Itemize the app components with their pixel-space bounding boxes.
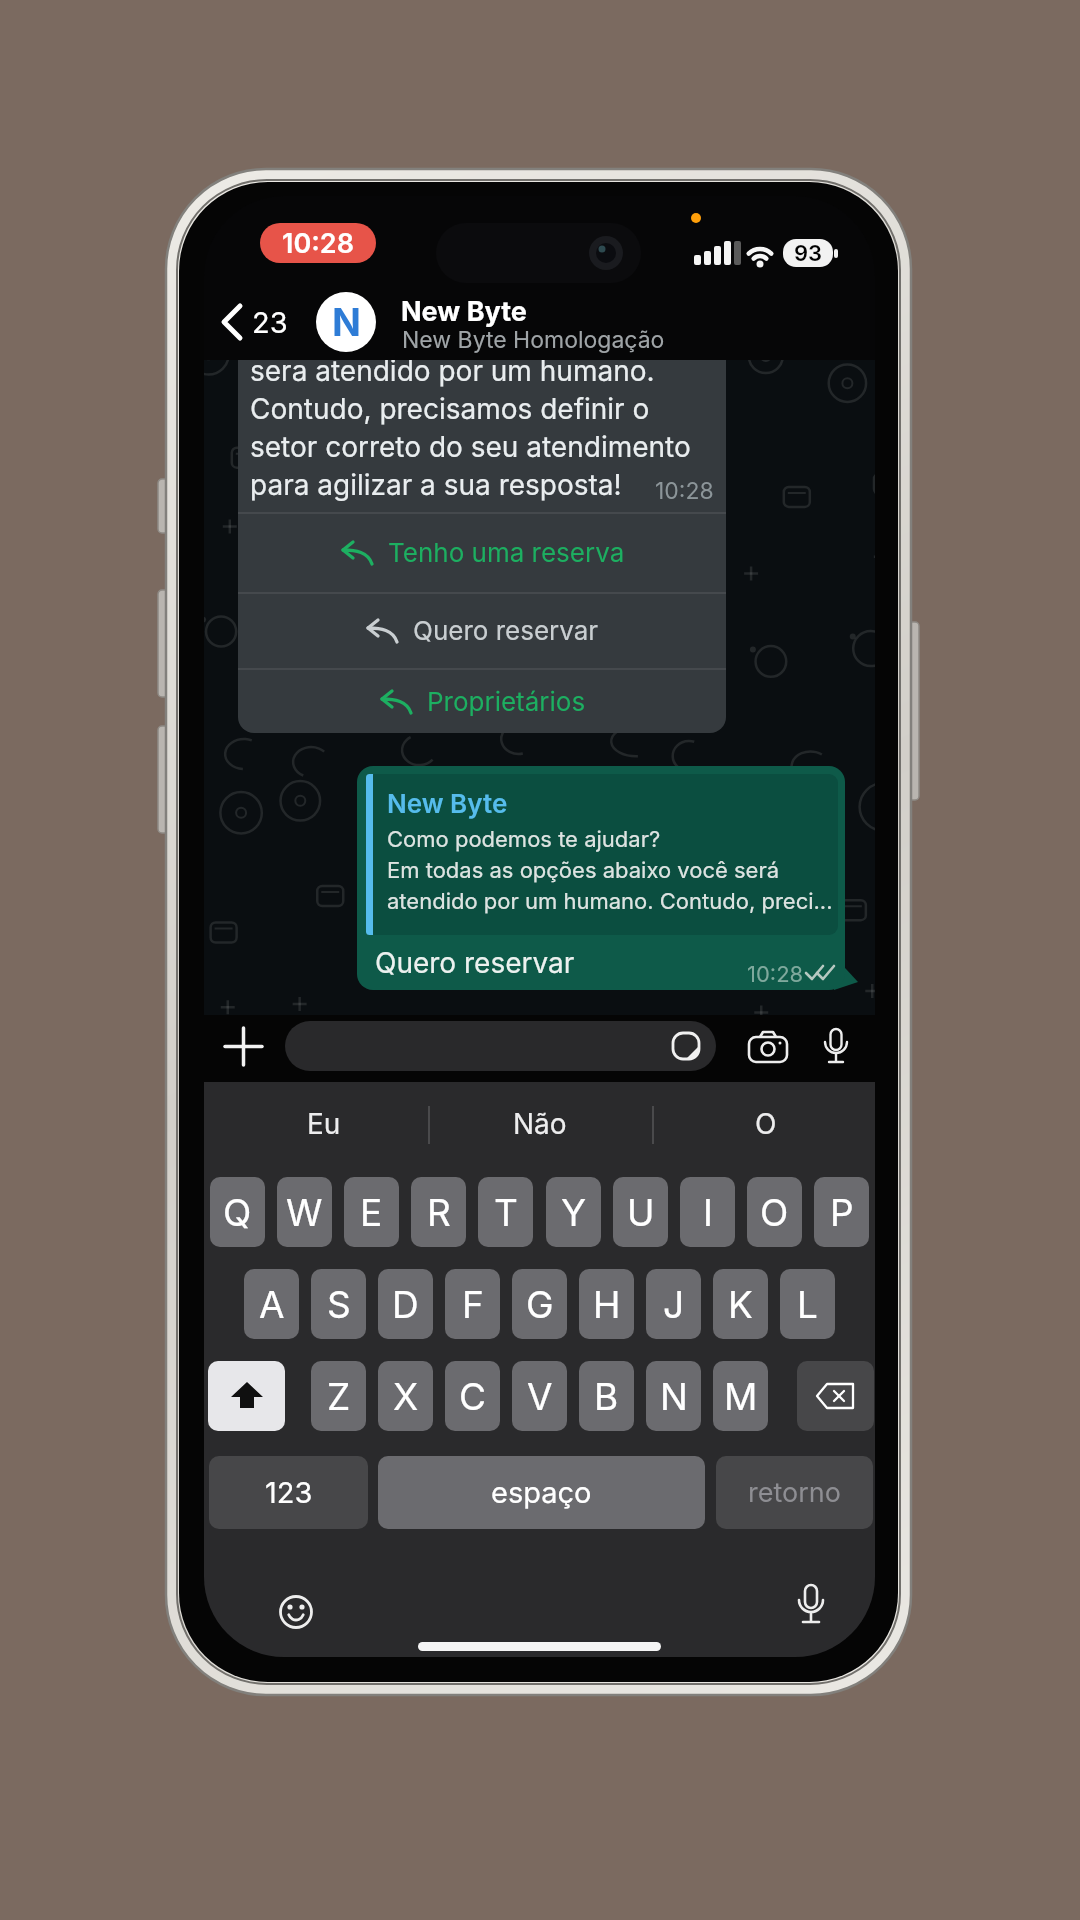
button[interactable]: L	[780, 1269, 835, 1339]
staticText: New Byte	[401, 295, 527, 328]
staticText: Proprietários	[427, 686, 586, 717]
staticText: E	[360, 1190, 383, 1235]
staticText: 23	[252, 305, 288, 340]
staticText: N	[332, 299, 361, 345]
button[interactable]: X	[378, 1361, 433, 1431]
staticText: P	[830, 1190, 854, 1235]
button[interactable]: I	[680, 1177, 735, 1247]
button[interactable]	[216, 302, 246, 342]
button[interactable]: Y	[546, 1177, 601, 1247]
staticText: F	[462, 1282, 484, 1327]
button[interactable]: G	[512, 1269, 567, 1339]
staticText: V	[527, 1374, 553, 1419]
staticText: Eu	[307, 1107, 341, 1141]
button[interactable]: R	[411, 1177, 466, 1247]
button[interactable]: Tenho uma reserva	[238, 513, 726, 592]
button[interactable]: D	[378, 1269, 433, 1339]
button[interactable]	[208, 1361, 285, 1431]
button[interactable]: U	[613, 1177, 668, 1247]
button[interactable]: Quero reservar	[238, 593, 726, 668]
staticText: 93	[794, 240, 823, 267]
button[interactable]: B	[579, 1361, 634, 1431]
button[interactable]: W	[277, 1177, 332, 1247]
staticText: Como podemos te ajudar? Em todas as opçõ…	[387, 826, 833, 914]
staticText: O	[760, 1190, 789, 1235]
button[interactable]: 123	[209, 1456, 368, 1529]
staticText: 123	[265, 1475, 313, 1510]
staticText: W	[286, 1190, 323, 1235]
button[interactable]: F	[445, 1269, 500, 1339]
staticText: T	[494, 1190, 518, 1235]
staticText: J	[663, 1282, 685, 1327]
button[interactable]: J	[646, 1269, 701, 1339]
staticText: 10:28	[282, 227, 354, 260]
button[interactable]: P	[814, 1177, 869, 1247]
button[interactable]: E	[344, 1177, 399, 1247]
staticText: Tenho uma reserva	[388, 537, 625, 568]
staticText: Quero reservar	[413, 615, 599, 646]
staticText: B	[594, 1374, 619, 1419]
button[interactable]: A	[244, 1269, 299, 1339]
staticText: H	[593, 1282, 621, 1327]
staticText: L	[797, 1282, 818, 1327]
button[interactable]: C	[445, 1361, 500, 1431]
staticText: R	[427, 1190, 451, 1235]
button[interactable]: V	[512, 1361, 567, 1431]
staticText: New Byte	[387, 788, 508, 819]
staticText: sera atendido por um humano. Contudo, pr…	[250, 360, 691, 502]
staticText: espaço	[491, 1475, 592, 1510]
button[interactable]: retorno	[716, 1456, 873, 1529]
button[interactable]	[749, 1032, 787, 1062]
button[interactable]: S	[311, 1269, 366, 1339]
staticText: A	[259, 1282, 285, 1327]
button[interactable]: N	[646, 1361, 701, 1431]
button[interactable]: H	[579, 1269, 634, 1339]
button[interactable]: Q	[210, 1177, 265, 1247]
staticText: M	[724, 1374, 758, 1419]
staticText: 10:28	[747, 961, 804, 988]
button[interactable]	[225, 1028, 262, 1065]
button[interactable]: Proprietários	[238, 669, 726, 733]
staticText: X	[393, 1374, 419, 1419]
staticText: Não	[513, 1107, 567, 1141]
button[interactable]: M	[713, 1361, 768, 1431]
button[interactable]: K	[713, 1269, 768, 1339]
staticText: C	[459, 1374, 487, 1419]
staticText: D	[392, 1282, 419, 1327]
staticText: I	[703, 1190, 713, 1235]
staticText: Y	[561, 1190, 587, 1235]
staticText: S	[327, 1282, 351, 1327]
staticText: retorno	[748, 1476, 841, 1509]
staticText: K	[728, 1282, 753, 1327]
staticText: Q	[223, 1190, 252, 1235]
button[interactable]: espaço	[378, 1456, 705, 1529]
staticText: G	[526, 1282, 554, 1327]
button[interactable]: N	[316, 292, 376, 352]
button[interactable]	[798, 1585, 824, 1631]
staticText: Quero reservar	[375, 946, 575, 980]
staticText: New Byte Homologação	[402, 326, 665, 354]
button[interactable]	[824, 1029, 848, 1067]
staticText: Z	[327, 1374, 351, 1419]
button[interactable]: Z	[311, 1361, 366, 1431]
button[interactable]: O	[747, 1177, 802, 1247]
staticText: 10:28	[655, 477, 714, 505]
button[interactable]	[285, 1021, 716, 1071]
staticText: O	[755, 1107, 777, 1141]
button[interactable]	[278, 1594, 314, 1630]
staticText: U	[627, 1190, 655, 1235]
button[interactable]	[797, 1361, 874, 1431]
staticText: N	[660, 1374, 688, 1419]
button[interactable]: T	[478, 1177, 533, 1247]
